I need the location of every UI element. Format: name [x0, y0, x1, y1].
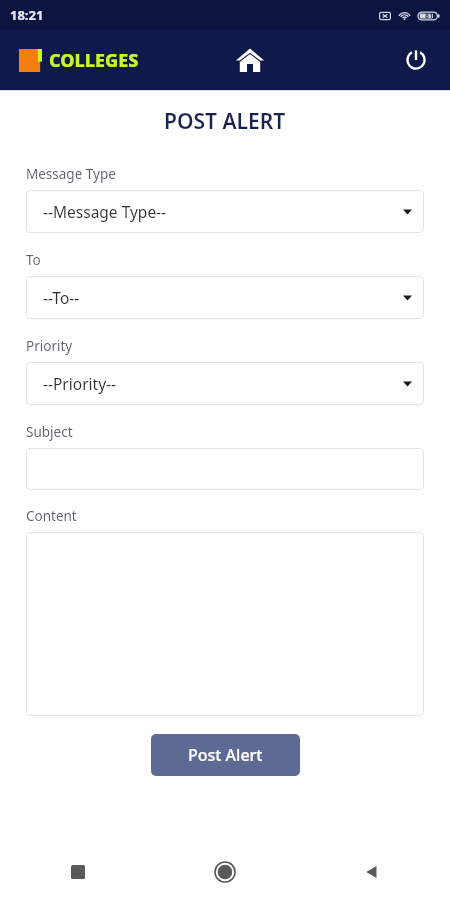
staticText: POST ALERT	[164, 107, 286, 136]
button[interactable]: Home	[228, 38, 272, 82]
button[interactable]: Post Alert	[151, 734, 300, 776]
staticText: To	[26, 251, 41, 269]
staticText: Message Type	[26, 165, 116, 183]
button[interactable]	[26, 532, 424, 716]
staticText: Post Alert	[188, 744, 263, 766]
staticText: --Priority--	[43, 373, 117, 394]
button[interactable]: Power / Logout	[394, 38, 438, 82]
staticText: 81	[425, 11, 434, 21]
button[interactable]: --Priority--	[26, 362, 424, 405]
staticText: COLLEGES	[49, 48, 139, 73]
staticText: --To--	[43, 287, 80, 308]
staticText: Priority	[26, 337, 73, 355]
staticText: Subject	[26, 423, 73, 441]
button[interactable]: COLLEGES	[19, 48, 139, 73]
button[interactable]	[26, 448, 424, 490]
button[interactable]: Home	[203, 850, 247, 894]
button[interactable]: --Message Type--	[26, 190, 424, 233]
staticText: --Message Type--	[43, 201, 167, 222]
button[interactable]: Recent apps	[56, 850, 100, 894]
button[interactable]: Back	[350, 850, 394, 894]
button[interactable]: --To--	[26, 276, 424, 319]
staticText: Content	[26, 507, 77, 525]
staticText: 18:21	[10, 6, 44, 24]
